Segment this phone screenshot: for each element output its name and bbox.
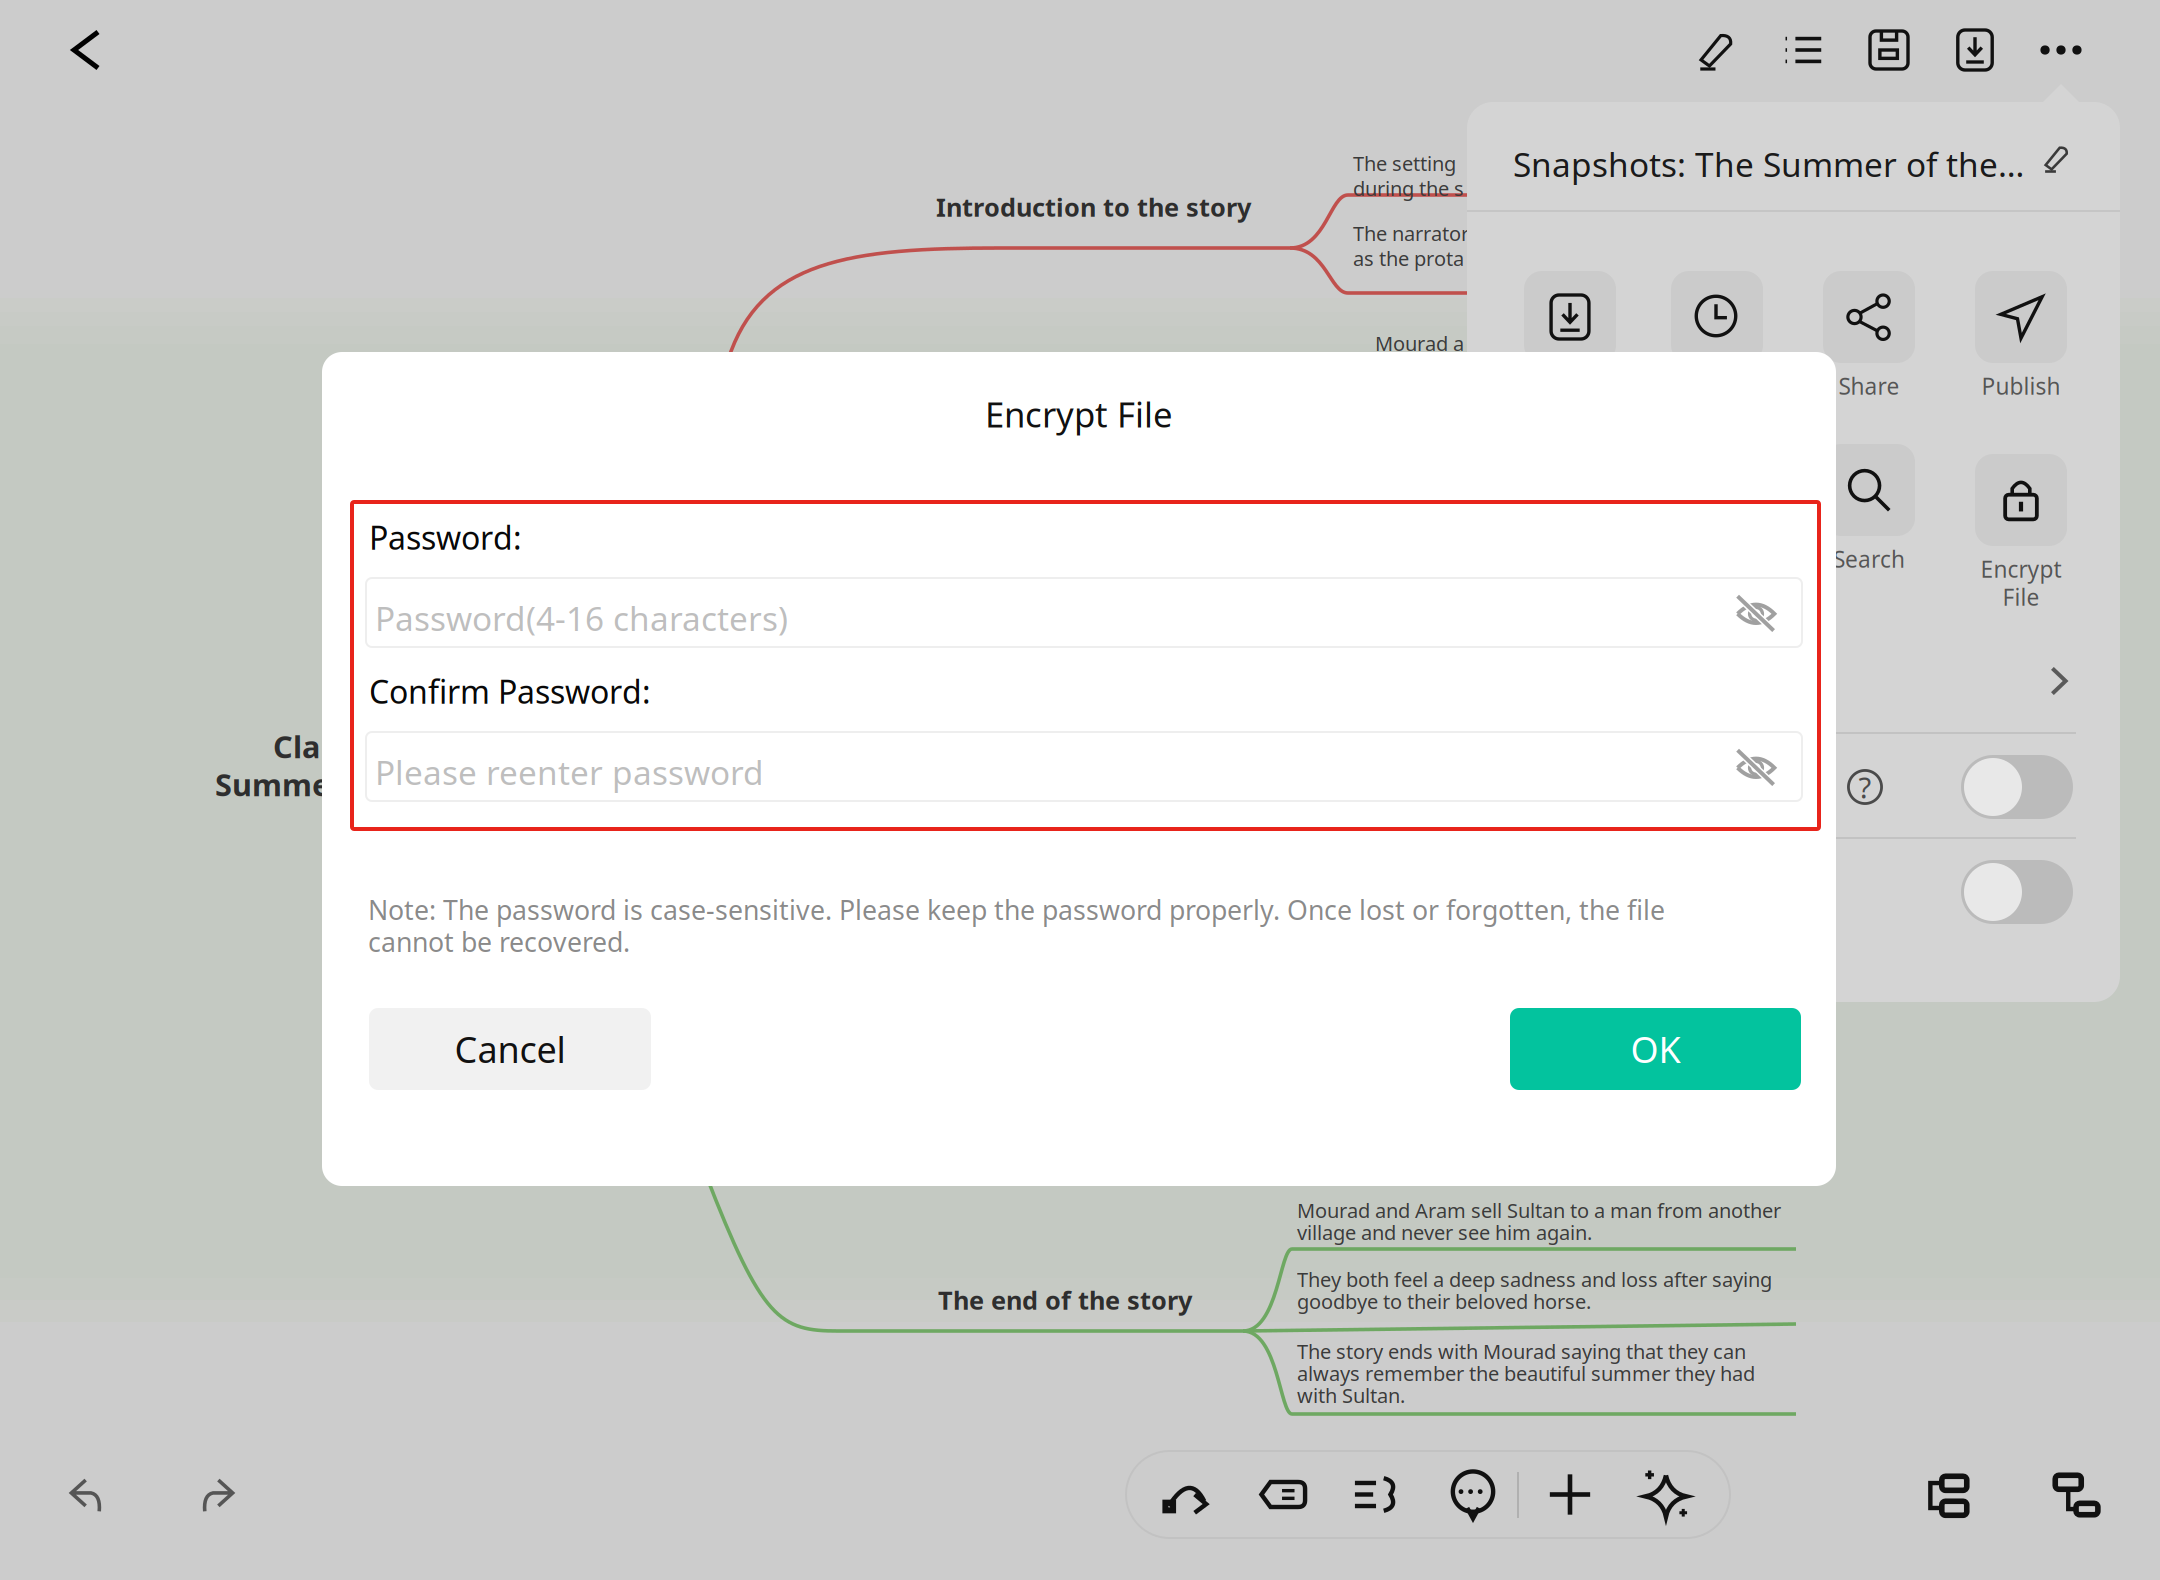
staticText: ? [1858,767,1871,806]
staticText: Summe [215,764,330,805]
staticText: Mourad and Aram sell Sultan to a man fro… [1297,1197,1781,1224]
button[interactable]: Export [1524,247,1616,387]
button[interactable]: History [1671,247,1763,387]
button[interactable]: Share [1823,247,1915,387]
button[interactable]: Undo [54,1462,120,1528]
staticText: always remember the beautiful summer the… [1297,1360,1755,1387]
button[interactable]: Recents [1671,420,1763,560]
staticText: The end of the story [938,1283,1192,1317]
staticText: OK [1630,1025,1680,1073]
staticText: cannot be recovered. [368,924,630,959]
button[interactable]: Undo arrow [1149,1451,1225,1538]
staticText: The setting [1353,150,1456,177]
staticText: village and never see him again. [1297,1219,1592,1246]
button[interactable]: Save [1846,7,1932,93]
staticText: as the prota [1353,245,1464,272]
staticText: Cla [273,726,320,767]
staticText: Mourad a [1375,330,1464,357]
button[interactable]: Encrypt [1975,420,2067,580]
button[interactable]: Insert note [1245,1451,1321,1538]
button[interactable]: Snapshot help toggle [1467,735,2120,839]
button[interactable]: Layout subtopics [1908,1456,1986,1534]
button[interactable]: Summary [1339,1451,1415,1538]
staticText: File [2002,582,2039,612]
button[interactable]: Redo [184,1462,250,1528]
button[interactable]: Rename snapshot [2029,130,2085,186]
button[interactable]: Edit [1674,7,1760,93]
button[interactable]: Comment [1435,1451,1511,1538]
button[interactable]: Search [1823,420,1915,560]
button[interactable]: Add topic [1532,1451,1608,1538]
staticText: Share [1838,371,1899,401]
button[interactable]: Layout structure [2036,1456,2114,1534]
button[interactable]: More options [1467,633,2120,729]
staticText: Note: The password is case-sensitive. Pl… [368,892,1665,927]
button[interactable]: Cancel [369,1008,651,1090]
button[interactable]: Back [44,8,128,92]
staticText: with Sultan. [1297,1382,1405,1409]
staticText: Encrypt File [985,391,1173,437]
staticText: Introduction to the story [936,190,1251,224]
staticText: Publish [1981,371,2060,401]
button[interactable]: More [2018,7,2104,93]
button[interactable]: Outline [1760,7,1846,93]
staticText: Encrypt [1980,554,2061,584]
staticText: during the s [1353,175,1464,202]
staticText: The story ends with Mourad saying that t… [1297,1338,1746,1365]
staticText: goodbye to their beloved horse. [1297,1288,1591,1315]
button[interactable]: Auto snapshot toggle [1467,840,2120,944]
staticText: Password: [369,516,522,558]
button[interactable]: Download [1932,7,2018,93]
button[interactable]: AI assistant [1627,1451,1703,1538]
staticText: Please reenter password [375,750,764,794]
button[interactable]: Save to files [1524,420,1616,560]
staticText: Cancel [454,1025,565,1073]
button[interactable]: Publish [1975,247,2067,387]
staticText: Search [1833,544,1905,574]
staticText: They both feel a deep sadness and loss a… [1297,1266,1772,1293]
button[interactable]: OK [1510,1008,1801,1090]
staticText: Snapshots: The Summer of the… [1513,142,2024,186]
staticText: Confirm Password: [369,670,651,712]
staticText: Password(4-16 characters) [375,596,788,640]
staticText: The narrator [1353,220,1469,247]
